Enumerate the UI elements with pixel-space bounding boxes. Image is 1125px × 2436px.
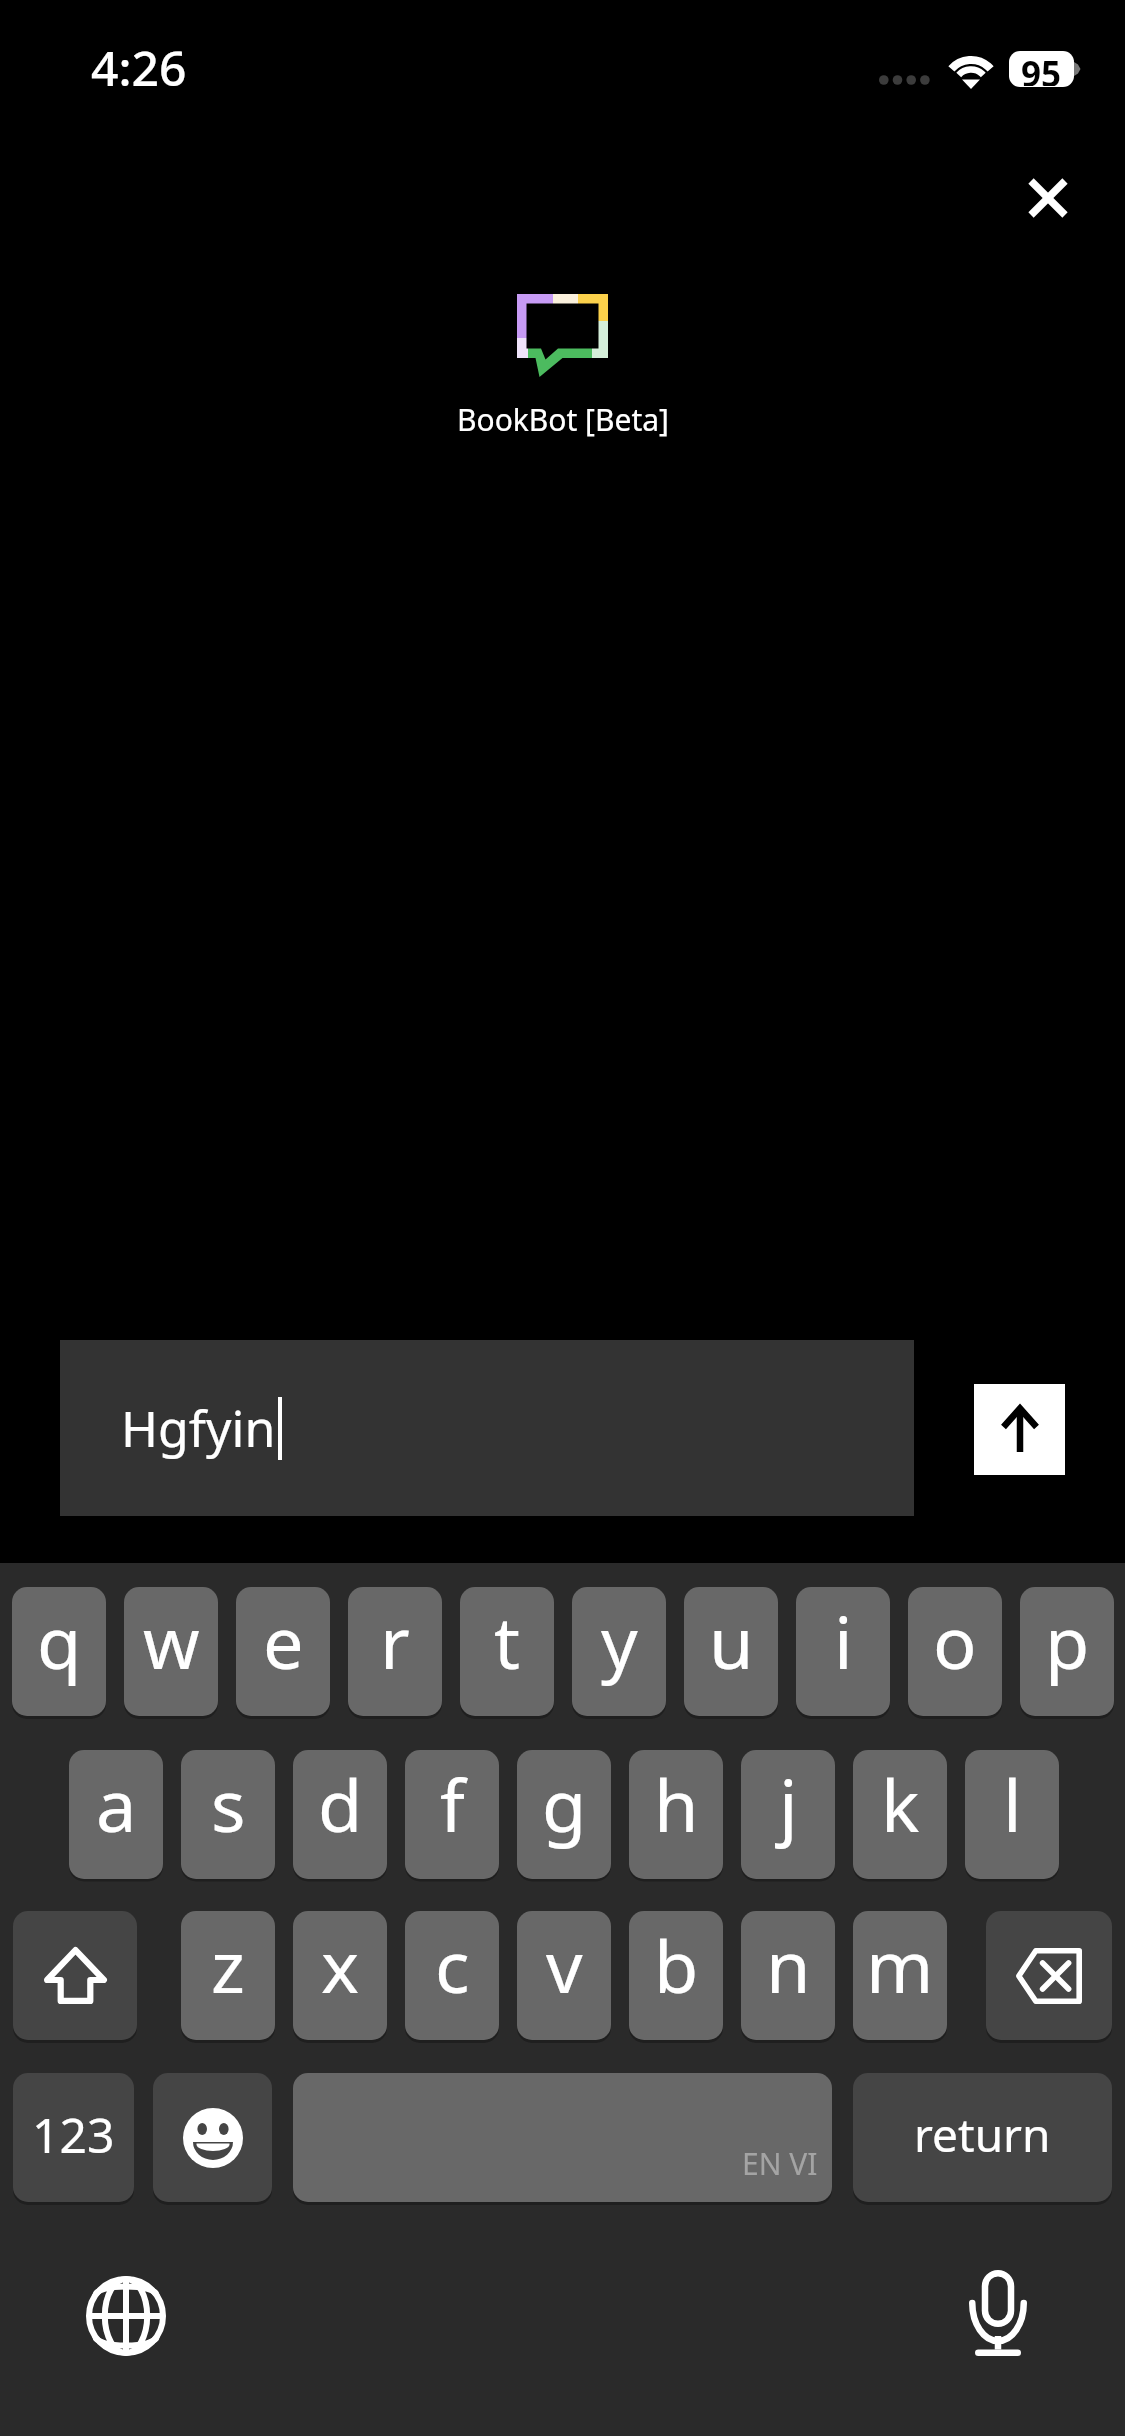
button[interactable]: s [181, 1750, 275, 1879]
button[interactable]: q [12, 1587, 106, 1716]
staticText: w [143, 1592, 200, 1690]
staticText: h [654, 1755, 699, 1853]
staticText: y [601, 1592, 638, 1690]
staticText: EN VI [742, 2143, 818, 2184]
button[interactable]: d [293, 1750, 387, 1879]
button[interactable]: y [572, 1587, 666, 1716]
button[interactable]: x [293, 1911, 387, 2040]
button[interactable]: c [405, 1911, 499, 2040]
button[interactable]: n [741, 1911, 835, 2040]
button[interactable]: k [853, 1750, 947, 1879]
button[interactable]: Space [293, 2073, 832, 2202]
staticText: q [37, 1592, 82, 1690]
button[interactable]: p [1020, 1587, 1114, 1716]
button[interactable]: t [460, 1587, 554, 1716]
button[interactable]: a [69, 1750, 163, 1879]
button[interactable]: g [517, 1750, 611, 1879]
button[interactable]: v [517, 1911, 611, 2040]
button[interactable]: l [965, 1750, 1059, 1879]
button[interactable]: j [741, 1750, 835, 1879]
staticText: n [766, 1916, 811, 2014]
staticText: r [380, 1592, 410, 1690]
staticText: e [263, 1592, 304, 1690]
staticText: j [779, 1755, 798, 1853]
button[interactable]: f [405, 1750, 499, 1879]
button[interactable]: Change keyboard language [66, 2256, 186, 2376]
staticText: 95 [1021, 51, 1062, 86]
button[interactable]: Send [974, 1384, 1065, 1475]
button[interactable]: i [796, 1587, 890, 1716]
button[interactable]: z [181, 1911, 275, 2040]
button[interactable]: e [236, 1587, 330, 1716]
staticText: a [96, 1755, 137, 1853]
staticText: s [211, 1755, 246, 1853]
staticText: p [1045, 1592, 1090, 1690]
staticText: k [881, 1755, 920, 1853]
staticText: d [318, 1755, 363, 1853]
staticText: t [494, 1592, 520, 1690]
button[interactable]: return [853, 2073, 1112, 2202]
staticText: o [933, 1592, 977, 1690]
staticText: z [211, 1916, 245, 2014]
staticText: 4:26 [91, 35, 187, 100]
button[interactable]: Voice input [938, 2253, 1058, 2373]
staticText: b [654, 1916, 699, 2014]
button[interactable]: r [348, 1587, 442, 1716]
staticText: m [866, 1916, 934, 2014]
staticText: g [542, 1755, 587, 1853]
staticText: v [546, 1916, 583, 2014]
button[interactable]: m [853, 1911, 947, 2040]
button[interactable]: b [629, 1911, 723, 2040]
staticText: l [1003, 1755, 1022, 1853]
staticText: Hgfyin [121, 1394, 276, 1462]
button[interactable]: h [629, 1750, 723, 1879]
staticText: BookBot [Beta] [457, 399, 669, 440]
button[interactable]: Shift [13, 1911, 137, 2040]
staticText: x [321, 1916, 360, 2014]
button[interactable]: Hgfyin [60, 1340, 914, 1516]
button[interactable]: Backspace [986, 1911, 1112, 2040]
button[interactable]: w [124, 1587, 218, 1716]
staticText: 123 [32, 2102, 115, 2167]
button[interactable]: Emoji [153, 2073, 272, 2202]
button[interactable]: Close [1008, 158, 1088, 238]
staticText: c [435, 1916, 470, 2014]
staticText: i [834, 1592, 853, 1690]
staticText: f [440, 1755, 465, 1853]
button[interactable]: u [684, 1587, 778, 1716]
button[interactable]: 123 [13, 2073, 134, 2202]
staticText: return [914, 2103, 1051, 2166]
staticText: u [709, 1592, 754, 1690]
button[interactable]: o [908, 1587, 1002, 1716]
